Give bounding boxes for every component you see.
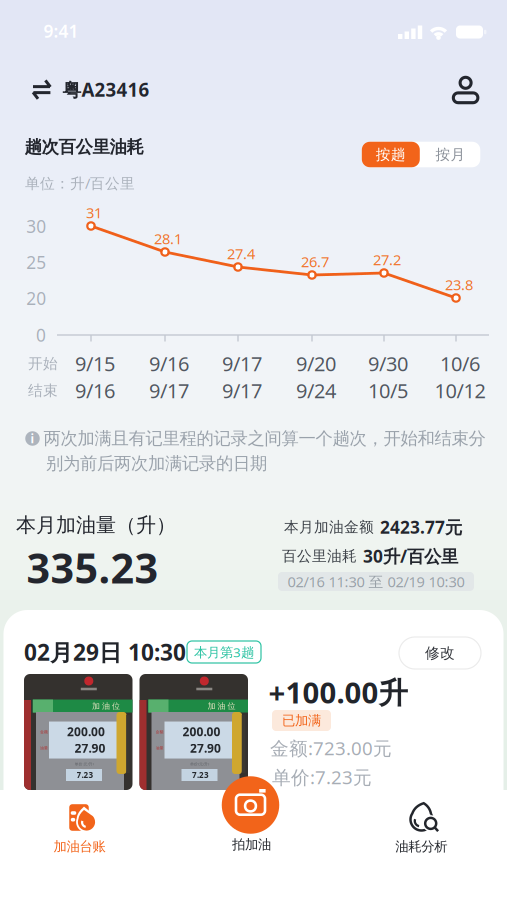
staticText: 按月 — [435, 145, 465, 163]
staticText: 9/16 — [75, 377, 115, 404]
staticText: 26.7 — [301, 252, 329, 271]
staticText: 单位：升/百公里 — [25, 173, 135, 193]
staticText: 10/12 — [434, 377, 485, 404]
staticText: 30升/百公里 — [363, 544, 458, 567]
staticText: 335.23 — [26, 540, 158, 595]
staticText: 9/16 — [149, 350, 189, 377]
button[interactable]: 加油照片1 — [24, 674, 132, 790]
staticText: 9:41 — [43, 19, 78, 42]
staticText: 30 — [26, 215, 46, 238]
staticText: 31 — [86, 203, 102, 222]
staticText: 油量 — [40, 745, 48, 750]
staticText: 10/6 — [440, 350, 480, 377]
staticText: 趟次百公里油耗 — [24, 136, 143, 158]
staticText: 9/30 — [368, 350, 408, 377]
staticText: 2423.77元 — [380, 515, 462, 538]
staticText: 27.4 — [227, 244, 255, 263]
staticText: 9/17 — [222, 350, 262, 377]
staticText: 本月加油量（升） — [16, 513, 176, 537]
button[interactable]: 按月 — [421, 142, 479, 167]
staticText: 23.8 — [445, 275, 473, 294]
button[interactable]: 加油台账 — [25, 780, 135, 864]
staticText: 02/16 11:30 至 02/19 10:30 — [287, 572, 464, 591]
staticText: 9/24 — [296, 377, 336, 404]
staticText: i — [30, 430, 34, 446]
staticText: 加油台账 — [53, 838, 105, 855]
staticText: 27.90 — [190, 740, 221, 756]
staticText: 两次加满且有记里程的记录之间算一个趟次，开始和结束分 — [43, 428, 485, 449]
staticText: 10/5 — [368, 377, 408, 404]
button[interactable]: 加油照片2 — [139, 674, 248, 790]
staticText: 单价(元/升) — [190, 761, 209, 767]
staticText: 按趟 — [376, 145, 406, 163]
staticText: 加 油 位 — [207, 701, 235, 711]
staticText: 结束 — [28, 381, 58, 399]
staticText: 9/15 — [75, 350, 115, 377]
staticText: 金额:723.00元 — [270, 736, 392, 760]
staticText: 20 — [26, 287, 46, 310]
staticText: 单价:7.23元 — [272, 765, 372, 789]
staticText: 7.23 — [192, 770, 209, 780]
staticText: 单价(元/升) — [74, 761, 93, 767]
staticText: 0 — [36, 323, 46, 346]
staticText: 本月第3趟 — [194, 643, 254, 661]
staticText: 修改 — [425, 644, 455, 662]
button[interactable]: 按趟 — [362, 142, 420, 167]
staticText: +100.00升 — [268, 672, 407, 711]
staticText: 加 油 位 — [92, 701, 120, 711]
staticText: 别为前后两次加满记录的日期 — [46, 453, 267, 474]
button[interactable]: 用户 — [444, 67, 488, 111]
staticText: 油量 — [155, 745, 163, 750]
staticText: 02月29日 10:30 — [24, 637, 186, 667]
staticText: 200.00 — [182, 723, 220, 739]
staticText: 油耗分析 — [395, 838, 447, 855]
staticText: 拍加油 — [232, 836, 271, 853]
staticText: 粤A23416 — [62, 77, 149, 102]
staticText: 9/17 — [222, 377, 262, 404]
staticText: 200.00 — [67, 723, 105, 739]
button[interactable]: 切换车辆 — [0, 67, 180, 111]
staticText: 金额 — [155, 729, 163, 734]
staticText: 27.90 — [74, 740, 105, 756]
button[interactable]: 修改 — [399, 637, 481, 669]
staticText: 27.2 — [373, 250, 401, 269]
staticText: 9/20 — [296, 350, 336, 377]
staticText: 9/17 — [149, 377, 189, 404]
staticText: 开始 — [28, 354, 58, 372]
button[interactable]: 油耗分析 — [366, 780, 480, 864]
staticText: 已加满 — [282, 712, 321, 729]
staticText: 百公里油耗 — [282, 547, 357, 565]
button[interactable]: 拍加油 — [189, 778, 313, 862]
staticText: 25 — [26, 251, 46, 274]
staticText: 本月加油金额 — [284, 518, 374, 536]
staticText: 28.1 — [154, 229, 182, 248]
staticText: 7.23 — [76, 770, 93, 780]
staticText: 金额 — [40, 729, 48, 734]
